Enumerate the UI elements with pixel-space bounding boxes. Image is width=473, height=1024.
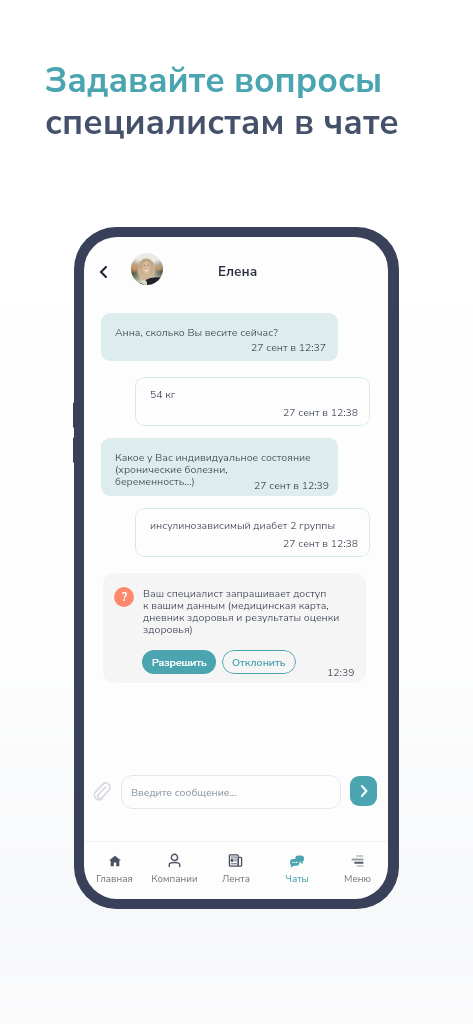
staticText: Главная [96,872,133,885]
staticText: Разрешить [152,655,207,669]
button[interactable]: Меню [327,842,388,885]
button[interactable]: Back [93,262,113,282]
staticText: Задавайте вопросы [45,57,383,105]
button[interactable]: Главная [84,842,144,885]
button[interactable]: Send message [350,776,377,806]
button[interactable]: Attach file [89,778,113,802]
staticText: Анна, сколько Вы весите сейчас? [115,325,278,339]
button[interactable]: Компании [144,842,205,885]
staticText: Отклонить [232,655,286,669]
staticText: Введите сообщение... [131,785,237,799]
staticText: инсулинозависимый диабет 2 группы [150,518,336,532]
staticText: 27 сент в 12:38 [283,536,359,550]
staticText: Компании [151,872,198,885]
staticText: Ваш специалист запрашивает доступ к ваши… [143,586,340,637]
button[interactable]: Чаты [266,842,327,885]
button[interactable]: Разрешить [142,650,216,674]
staticText: 54 кг [150,387,176,401]
staticText: 27 сент в 12:38 [283,405,359,419]
staticText: Меню [344,872,371,885]
staticText: специалистам в чате [45,99,399,147]
button[interactable]: Лента [205,842,266,885]
staticText: ? [122,590,127,605]
staticText: Елена [218,262,258,280]
staticText: Чаты [285,872,309,885]
staticText: 27 сент в 12:37 [251,340,327,354]
button[interactable]: Отклонить [222,650,296,674]
staticText: Какое у Вас индивидуальное состояние (хр… [115,450,311,488]
staticText: Лента [222,872,250,885]
staticText: 27 сент в 12:39 [254,478,330,492]
button[interactable]: Введите сообщение... [121,775,341,809]
staticText: 12:39 [327,665,355,679]
